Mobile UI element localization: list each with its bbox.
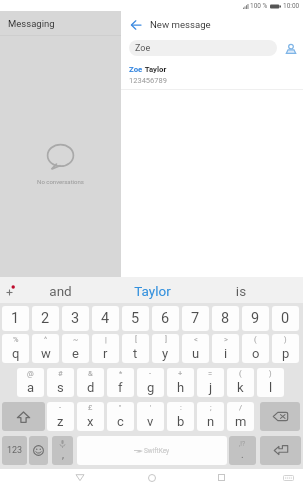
staticText: 6 (161, 310, 170, 327)
staticText: 123 (7, 445, 23, 456)
button[interactable]: Space (77, 436, 227, 465)
button[interactable]: - (47, 402, 74, 431)
button[interactable]: > (212, 334, 239, 363)
button[interactable]: ,!? (229, 436, 256, 465)
button[interactable]: 3 (62, 306, 89, 331)
button[interactable]: 4 (92, 306, 119, 331)
button[interactable]: 1 (2, 306, 29, 331)
button[interactable]: 123 (2, 436, 27, 465)
staticText: ^ (44, 335, 48, 344)
button[interactable]: | (92, 334, 119, 363)
staticText: 123456789 (129, 76, 167, 85)
button[interactable]: ) (272, 334, 299, 363)
button[interactable]: Select contacts (282, 40, 300, 58)
staticText: ; (210, 403, 212, 412)
button[interactable]: Home (138, 469, 165, 486)
button[interactable]: Zoe (129, 40, 277, 56)
staticText: . (241, 449, 244, 461)
staticText: ~ (73, 335, 79, 344)
staticText: - (59, 403, 62, 412)
staticText: % (13, 335, 19, 344)
staticText: - (149, 369, 152, 378)
staticText: c (117, 414, 124, 429)
button[interactable]: % (2, 334, 29, 363)
staticText: + (178, 369, 183, 378)
button[interactable]: Enter (260, 436, 301, 465)
button[interactable]: # (47, 368, 74, 397)
button[interactable]: [ (122, 334, 149, 363)
button[interactable]: - (137, 368, 164, 397)
button[interactable]: 6 (152, 306, 179, 331)
button[interactable]: 0 (272, 306, 299, 331)
button[interactable]: Emoji (29, 436, 48, 465)
staticText: ,!? (239, 440, 246, 448)
staticText: Taylor (143, 65, 167, 74)
button[interactable]: Voice input (52, 436, 73, 465)
staticText: ( (239, 369, 242, 378)
button[interactable]: ( (227, 368, 254, 397)
button[interactable]: = (197, 368, 224, 397)
button[interactable]: Back (126, 15, 146, 35)
staticText: ) (269, 369, 272, 378)
button[interactable]: ) (257, 368, 284, 397)
button[interactable]: Shift (2, 402, 45, 431)
button[interactable]: : (167, 402, 194, 431)
staticText: d (87, 380, 95, 395)
staticText: | (105, 335, 107, 344)
staticText: o (252, 346, 260, 361)
staticText: b (177, 414, 185, 429)
staticText: z (57, 414, 64, 429)
button[interactable]: ^ (32, 334, 59, 363)
button[interactable]: 9 (242, 306, 269, 331)
staticText: 5 (131, 310, 140, 327)
staticText: 1 (11, 310, 20, 327)
staticText: 0 (281, 310, 290, 327)
staticText: £ (88, 403, 93, 412)
button[interactable]: / (227, 402, 254, 431)
button[interactable]: ~ (62, 334, 89, 363)
button[interactable]: 8 (212, 306, 239, 331)
button[interactable]: Zoe (121, 58, 303, 88)
staticText: ( (254, 335, 257, 344)
button[interactable]: ] (152, 334, 179, 363)
button[interactable]: * (107, 368, 134, 397)
button[interactable]: & (77, 368, 104, 397)
staticText: [ (135, 335, 137, 344)
button[interactable]: 7 (182, 306, 209, 331)
staticText: m (235, 414, 247, 429)
button[interactable]: Back (66, 469, 94, 486)
staticText: 100 % (250, 2, 268, 10)
staticText: , (62, 449, 64, 461)
button[interactable]: Recent apps (208, 469, 235, 486)
button[interactable]: £ (77, 402, 104, 431)
button[interactable]: < (182, 334, 209, 363)
button[interactable]: ' (137, 402, 164, 431)
staticText: 10:00 (283, 2, 300, 10)
staticText: j (209, 380, 213, 395)
staticText: Zoe (135, 43, 151, 54)
button[interactable]: @ (17, 368, 44, 397)
button[interactable]: " (107, 402, 134, 431)
staticText: l (269, 380, 273, 395)
staticText: v (147, 414, 154, 429)
staticText: 2 (41, 310, 50, 327)
staticText: w (41, 346, 51, 361)
button[interactable]: More options (0, 277, 34, 303)
button[interactable]: + (167, 368, 194, 397)
staticText: ' (150, 403, 152, 412)
button[interactable]: Hide keyboard (277, 469, 299, 486)
button[interactable]: 2 (32, 306, 59, 331)
button[interactable]: ; (197, 402, 224, 431)
staticText: 8 (221, 310, 230, 327)
staticText: = (208, 369, 213, 378)
staticText: & (88, 369, 93, 378)
staticText: > (224, 335, 228, 344)
button[interactable]: Backspace (260, 402, 300, 431)
button[interactable]: ( (242, 334, 269, 363)
staticText: q (12, 346, 20, 361)
staticText: * (119, 369, 123, 378)
staticText: ) (284, 335, 287, 344)
staticText: 9 (251, 310, 260, 327)
button[interactable]: 5 (122, 306, 149, 331)
staticText: f (118, 380, 123, 395)
